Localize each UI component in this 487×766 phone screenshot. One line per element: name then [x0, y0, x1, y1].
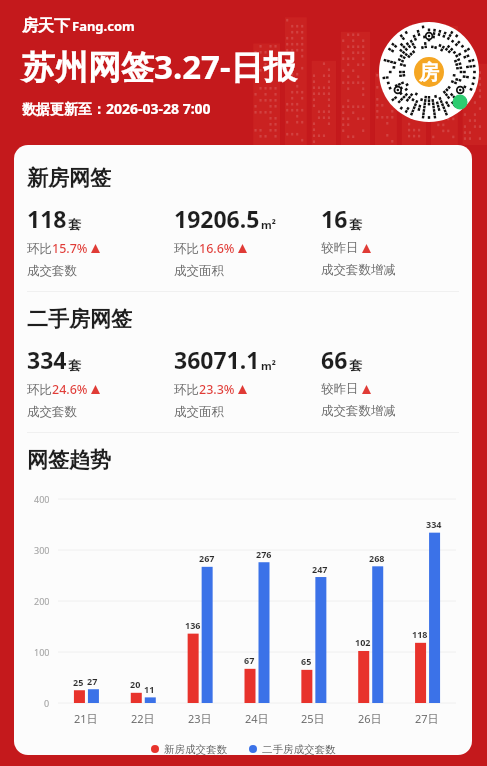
staticText: 成交套数增减: [321, 262, 396, 278]
staticText: 环比: [27, 241, 52, 257]
staticText: 27日: [415, 711, 439, 726]
button[interactable]: 二手房成交套数: [249, 743, 336, 755]
staticText: 15.7%: [52, 240, 88, 257]
staticText: 334: [27, 344, 67, 375]
staticText: 136: [185, 619, 201, 631]
staticText: 268: [369, 552, 385, 564]
staticText: 成交套数: [27, 263, 77, 279]
staticText: 网签趋势: [27, 447, 111, 473]
staticText: 21日: [74, 711, 98, 726]
staticText: 成交套数: [27, 404, 77, 420]
staticText: 成交面积: [174, 404, 224, 420]
staticText: 新房成交套数: [164, 743, 227, 755]
staticText: 较昨日: [321, 381, 359, 397]
staticText: 24日: [245, 711, 269, 726]
button[interactable]: 118: [27, 203, 174, 279]
staticText: 二手房网签: [27, 306, 132, 332]
staticText: 26日: [358, 711, 382, 726]
staticText: m²: [261, 358, 276, 373]
staticText: 新房网签: [27, 165, 111, 191]
staticText: 25: [73, 676, 84, 688]
staticText: 24.6%: [52, 381, 88, 398]
staticText: 200: [34, 595, 50, 607]
button[interactable]: 16: [321, 203, 459, 278]
staticText: 334: [426, 518, 442, 530]
staticText: 400: [34, 493, 50, 505]
staticText: 0: [44, 697, 50, 709]
button[interactable]: 334: [27, 344, 174, 420]
staticText: 数据更新至：2026-03-28 7:00: [22, 99, 211, 118]
button[interactable]: 新房成交套数: [151, 743, 227, 755]
button[interactable]: 66: [321, 344, 459, 419]
staticText: Fang.com: [72, 17, 135, 35]
staticText: 20: [130, 678, 141, 690]
staticText: 118: [27, 203, 67, 234]
staticText: 套: [349, 357, 362, 373]
staticText: 套: [68, 357, 81, 373]
staticText: 23日: [188, 711, 212, 726]
staticText: 36071.1: [174, 344, 260, 375]
staticText: 65: [301, 655, 312, 667]
staticText: 二手房成交套数: [262, 743, 336, 755]
staticText: 102: [355, 636, 371, 648]
staticText: 套: [68, 216, 81, 232]
staticText: 11: [144, 683, 155, 695]
staticText: 247: [312, 563, 328, 575]
staticText: 成交面积: [174, 263, 224, 279]
staticText: 276: [256, 548, 272, 560]
staticText: 100: [34, 646, 50, 658]
staticText: 16.6%: [199, 240, 235, 257]
staticText: 22日: [131, 711, 155, 726]
staticText: 300: [34, 544, 50, 556]
staticText: 环比: [174, 382, 199, 398]
staticText: m²: [261, 217, 276, 232]
staticText: 27: [87, 675, 98, 687]
staticText: 房天下: [22, 16, 70, 36]
staticText: 环比: [27, 382, 52, 398]
staticText: 23.3%: [199, 381, 235, 398]
button[interactable]: 36071.1: [174, 344, 321, 420]
staticText: 房: [419, 60, 439, 85]
staticText: 套: [349, 216, 362, 232]
staticText: 16: [321, 203, 348, 234]
staticText: 67: [244, 654, 255, 666]
button[interactable]: 扫描二维码: [379, 22, 479, 122]
staticText: 25日: [301, 711, 325, 726]
staticText: 267: [199, 552, 215, 564]
staticText: 118: [412, 628, 428, 640]
button[interactable]: 19206.5: [174, 203, 321, 279]
staticText: 成交套数增减: [321, 403, 396, 419]
staticText: 苏州网签3.27-日报: [22, 44, 297, 89]
staticText: 环比: [174, 241, 199, 257]
staticText: 19206.5: [174, 203, 260, 234]
staticText: 66: [321, 344, 348, 375]
staticText: 较昨日: [321, 240, 359, 256]
